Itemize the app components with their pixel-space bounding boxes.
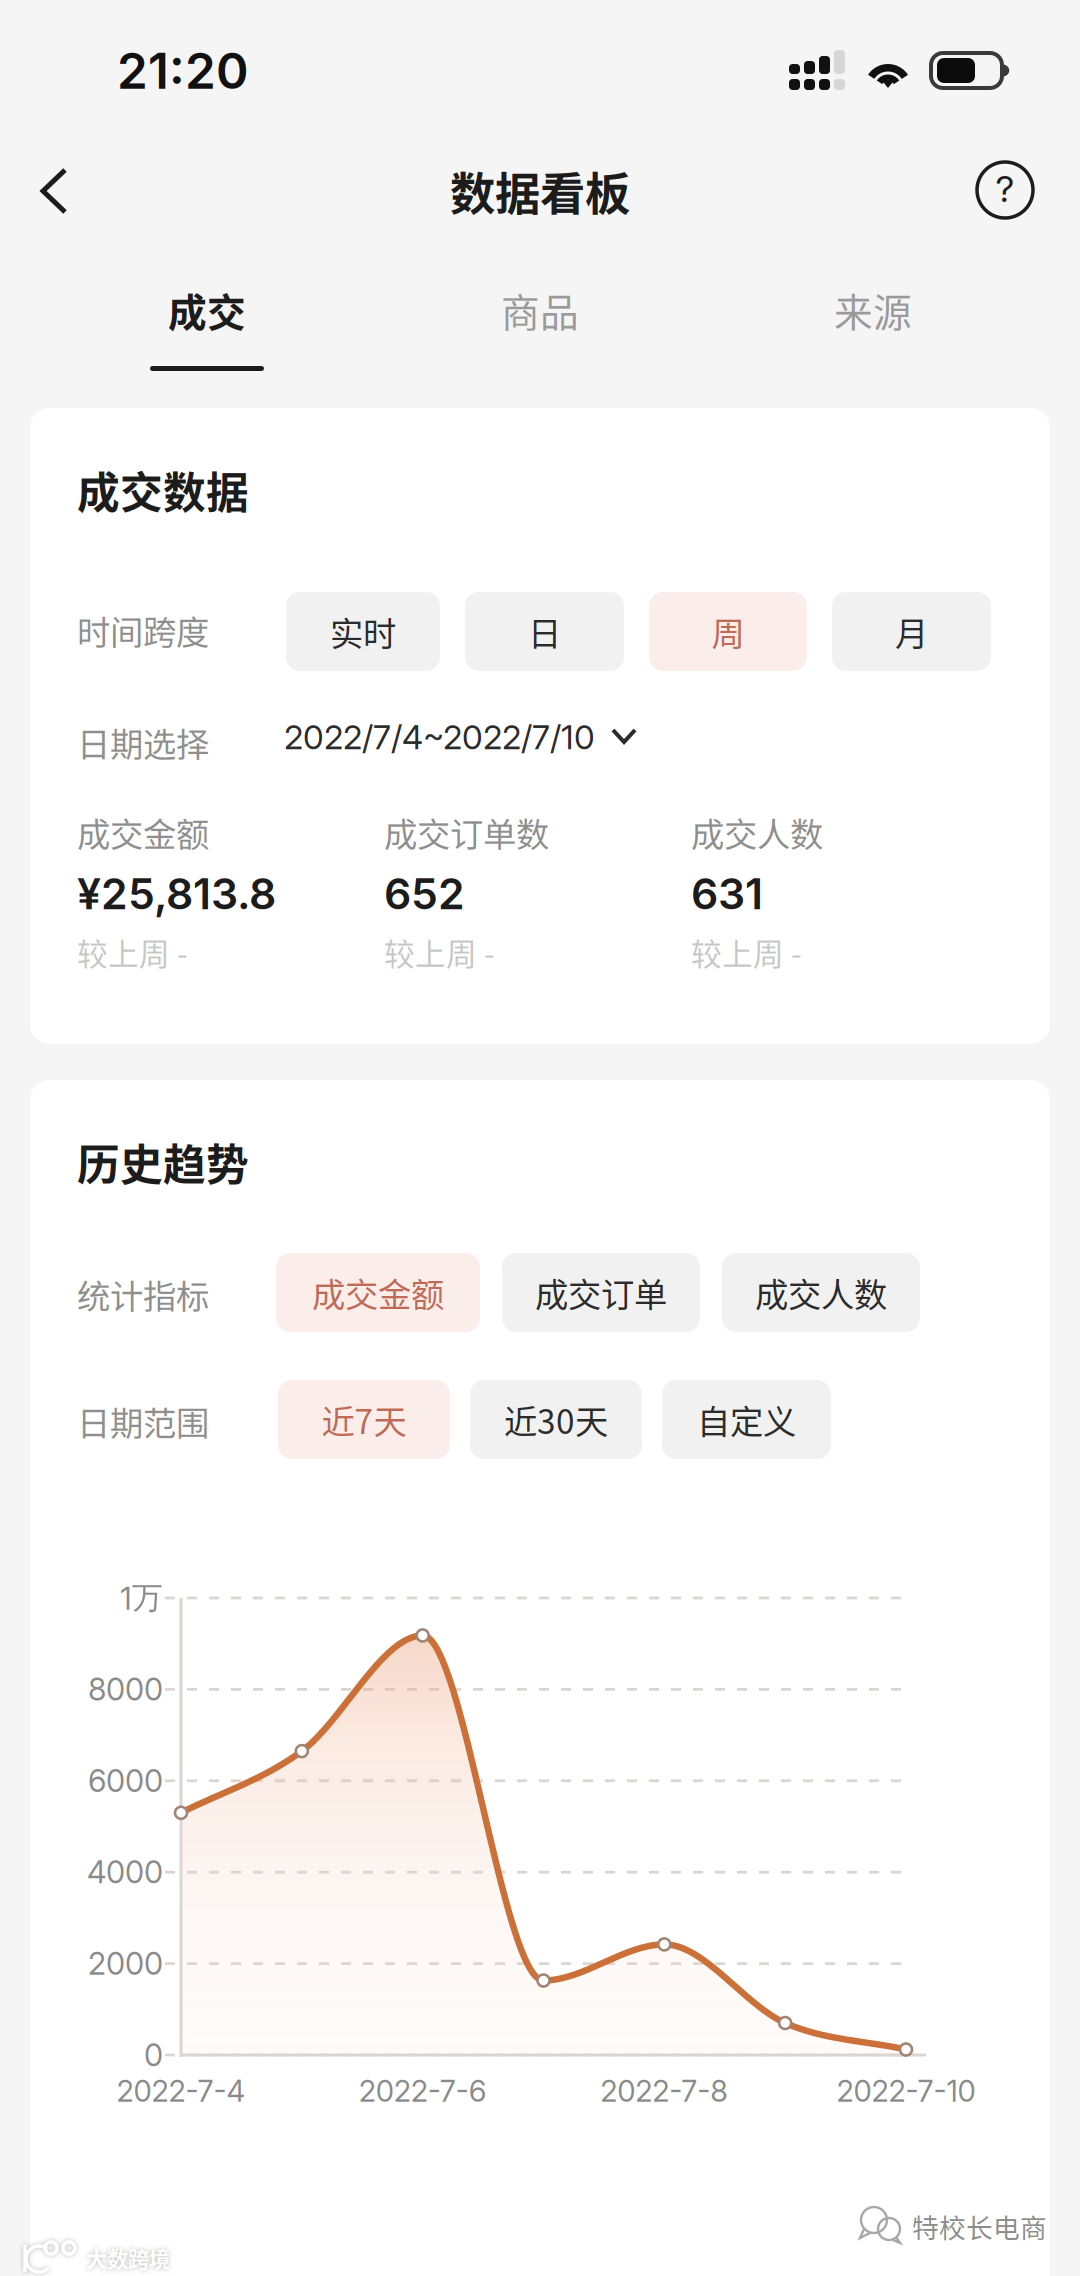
staticText: 数据看板 (450, 158, 630, 224)
staticText: 631 (691, 868, 763, 920)
button[interactable]: 来源 (706, 282, 1039, 382)
staticText: 实时 (330, 607, 396, 656)
staticText: 月 (895, 607, 928, 656)
button[interactable]: 成交金额 (276, 1253, 480, 1332)
staticText: 2000 (88, 1945, 163, 1982)
button[interactable]: 商品 (373, 282, 706, 382)
staticText: 6000 (88, 1762, 163, 1799)
staticText: 商品 (501, 282, 579, 338)
staticText: 较上周 - (384, 930, 495, 974)
staticText: 时间跨度 (77, 606, 209, 654)
staticText: 周 (711, 607, 744, 656)
staticText: 2022-7-8 (600, 2073, 728, 2109)
staticText: 2022-7-10 (836, 2073, 975, 2109)
staticText: ¥25,813.8 (77, 868, 276, 920)
button[interactable]: 2022/7/4~2022/7/10 (284, 710, 637, 764)
staticText: 4000 (87, 1854, 163, 1891)
staticText: 来源 (834, 282, 912, 338)
button[interactable]: 自定义 (662, 1380, 831, 1459)
staticText: 成交订单 (535, 1268, 667, 1317)
staticText: 成交人数 (691, 808, 823, 856)
button[interactable]: 月 (832, 592, 991, 671)
button[interactable]: 成交订单 (502, 1253, 700, 1332)
button[interactable]: 周 (649, 592, 807, 671)
button[interactable]: 近7天 (278, 1380, 450, 1459)
staticText: 特校长电商 (912, 2207, 1047, 2246)
button[interactable]: Back (13, 141, 113, 241)
staticText: 近30天 (504, 1395, 608, 1444)
staticText: 日期范围 (77, 1397, 209, 1445)
staticText: 0 (144, 2036, 163, 2073)
staticText: 21:20 (117, 41, 249, 101)
staticText: 大数跨境 (86, 2243, 170, 2273)
staticText: 较上周 - (691, 930, 802, 974)
staticText: 8000 (88, 1671, 163, 1708)
button[interactable]: 成交 (40, 282, 373, 382)
staticText: 成交金额 (312, 1268, 444, 1317)
staticText: 成交数据 (77, 459, 249, 521)
staticText: 成交 (168, 282, 246, 338)
staticText: 近7天 (321, 1395, 406, 1444)
button[interactable]: 日 (465, 592, 624, 671)
staticText: 较上周 - (77, 930, 188, 974)
staticText: 日期选择 (77, 718, 209, 766)
button[interactable]: 实时 (286, 592, 440, 671)
staticText: 2022/7/4~2022/7/10 (284, 717, 595, 757)
button[interactable]: 成交人数 (722, 1253, 920, 1332)
staticText: 652 (384, 868, 465, 920)
staticText: 历史趋势 (77, 1131, 249, 1193)
staticText: 统计指标 (77, 1270, 209, 1318)
staticText: 成交金额 (77, 808, 209, 856)
staticText: 2022-7-6 (359, 2073, 487, 2109)
staticText: ? (995, 167, 1014, 211)
staticText: 成交人数 (755, 1268, 887, 1317)
button[interactable]: Help (962, 147, 1048, 233)
staticText: 日 (528, 607, 561, 656)
staticText: 1万 (120, 1579, 163, 1617)
button[interactable]: 近30天 (470, 1380, 642, 1459)
staticText: 成交订单数 (384, 808, 549, 856)
staticText: 自定义 (697, 1395, 796, 1444)
staticText: 2022-7-4 (116, 2073, 245, 2109)
